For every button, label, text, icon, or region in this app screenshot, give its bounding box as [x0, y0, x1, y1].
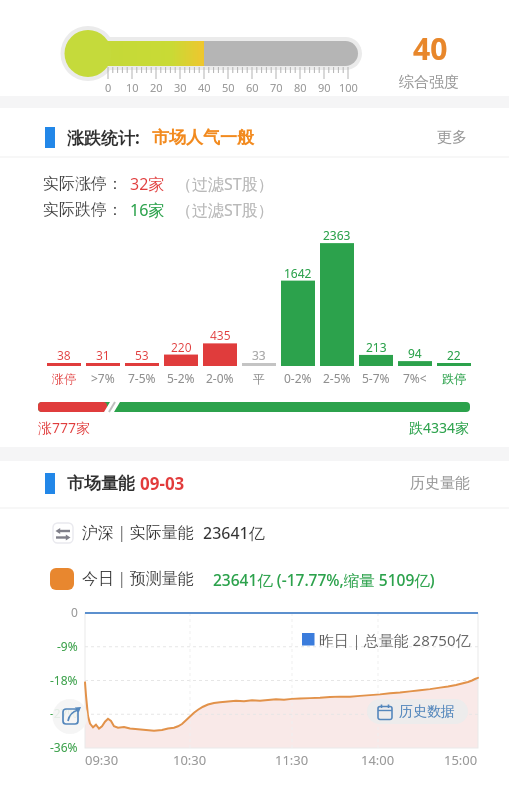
- staticText: 11:30: [275, 751, 309, 769]
- staticText: 0: [71, 604, 78, 620]
- staticText: 涨停: [52, 371, 76, 386]
- staticText: 1642: [284, 265, 312, 281]
- staticText: 09-03: [140, 472, 185, 495]
- staticText: 100: [339, 80, 358, 95]
- staticText: 40: [413, 28, 448, 69]
- staticText: 33: [252, 347, 266, 363]
- staticText: 31: [96, 347, 110, 363]
- staticText: 5-2%: [167, 370, 195, 386]
- staticText: 15:00: [444, 751, 478, 769]
- staticText: 0-2%: [284, 370, 312, 386]
- staticText: 38: [57, 347, 71, 363]
- staticText: 实际跌停：: [43, 200, 123, 220]
- staticText: 53: [135, 347, 149, 363]
- staticText: 市场人气一般: [152, 127, 254, 148]
- staticText: 平: [253, 371, 265, 386]
- staticText: 23641亿: [203, 522, 265, 544]
- staticText: 94: [408, 345, 422, 361]
- staticText: （过滤ST股）: [176, 173, 274, 195]
- staticText: -9%: [57, 638, 78, 654]
- staticText: -36%: [50, 739, 78, 755]
- staticText: 7-5%: [128, 370, 156, 386]
- staticText: 实际涨停：: [43, 174, 123, 194]
- staticText: 昨日｜总量能 28750亿: [319, 630, 471, 650]
- staticText: 2-5%: [323, 370, 351, 386]
- staticText: 435: [210, 327, 231, 343]
- staticText: 跌4334家: [409, 418, 470, 437]
- staticText: 14:00: [361, 751, 395, 769]
- staticText: 2363: [323, 227, 351, 243]
- staticText: 32家: [130, 173, 165, 195]
- staticText: 50: [222, 80, 235, 95]
- staticText: 10:30: [173, 751, 207, 769]
- staticText: 涨777家: [38, 418, 91, 437]
- staticText: 跌停: [442, 371, 466, 386]
- staticText: -27%: [50, 705, 78, 721]
- staticText: 0: [105, 80, 112, 95]
- staticText: 80: [294, 80, 307, 95]
- staticText: 40: [198, 80, 211, 95]
- staticText: 历史数据: [399, 703, 455, 721]
- staticText: （过滤ST股）: [176, 199, 274, 221]
- staticText: 30: [174, 80, 187, 95]
- staticText: 90: [318, 80, 331, 95]
- staticText: 2-0%: [206, 370, 234, 386]
- staticText: 09:30: [85, 751, 119, 769]
- staticText: -18%: [50, 672, 78, 688]
- staticText: 22: [447, 347, 461, 363]
- staticText: 23641亿 (-17.77%,缩量 5109亿): [213, 569, 435, 590]
- staticText: 7%<: [403, 370, 427, 386]
- staticText: 5-7%: [362, 370, 390, 386]
- staticText: 220: [171, 339, 192, 355]
- staticText: 60: [246, 80, 259, 95]
- staticText: 20: [150, 80, 163, 95]
- staticText: 213: [366, 339, 387, 355]
- staticText: 历史量能: [410, 474, 470, 493]
- staticText: 16家: [130, 199, 165, 221]
- staticText: 10: [126, 80, 139, 95]
- staticText: 沪深｜实际量能: [82, 523, 194, 543]
- staticText: 70: [270, 80, 283, 95]
- staticText: 更多: [437, 128, 467, 147]
- staticText: 涨跌统计:: [67, 126, 140, 149]
- staticText: 综合强度: [399, 73, 459, 92]
- staticText: 今日｜预测量能: [82, 569, 194, 589]
- staticText: 市场量能: [67, 473, 135, 494]
- staticText: >7%: [91, 370, 115, 386]
